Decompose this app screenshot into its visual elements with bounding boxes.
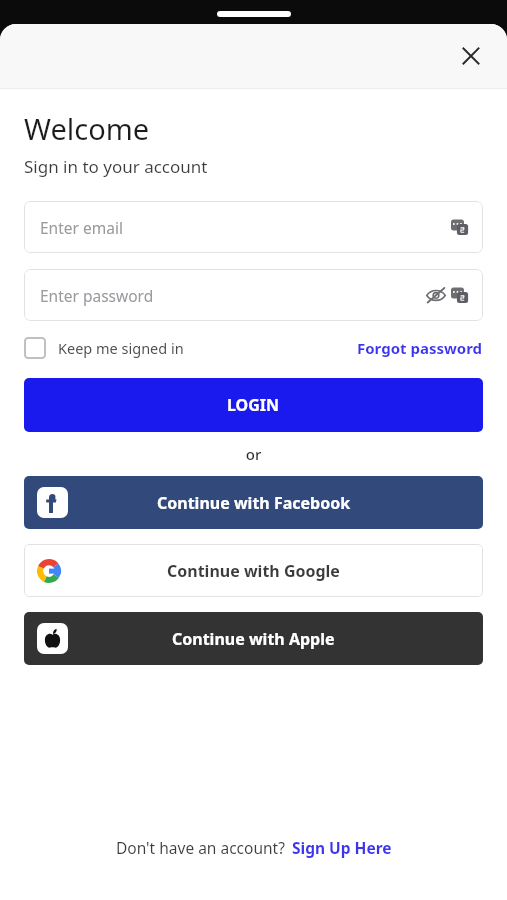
button[interactable]: Autofill [449, 216, 471, 238]
staticText: Continue with Facebook [157, 492, 351, 514]
staticText: Welcome [24, 109, 150, 148]
button[interactable]: Enter password [24, 269, 483, 321]
button[interactable]: Autofill [449, 284, 471, 306]
staticText: Enter password [40, 285, 154, 306]
staticText: Forgot password [357, 338, 483, 358]
staticText: Don't have an account? [116, 837, 285, 858]
button[interactable]: Close [451, 36, 491, 76]
staticText: Continue with Google [167, 560, 340, 582]
button[interactable]: Continue with Facebook [24, 476, 483, 529]
button[interactable]: Enter email [24, 201, 483, 253]
staticText: Continue with Apple [172, 628, 335, 650]
button[interactable]: Forgot password [357, 338, 483, 358]
button[interactable]: Show password [424, 283, 448, 307]
staticText: or [24, 444, 483, 464]
staticText: Keep me signed in [58, 338, 184, 358]
staticText: Sign in to your account [24, 155, 208, 178]
button[interactable]: LOGIN [24, 378, 483, 432]
staticText: LOGIN [227, 394, 280, 416]
staticText: Sign Up Here [292, 837, 392, 858]
button[interactable]: Continue with Google [24, 544, 483, 597]
button[interactable]: Keep me signed in [24, 337, 184, 359]
button[interactable]: Continue with Apple [24, 612, 483, 665]
staticText: Enter email [40, 217, 123, 238]
button[interactable]: Sign Up Here [292, 837, 392, 858]
